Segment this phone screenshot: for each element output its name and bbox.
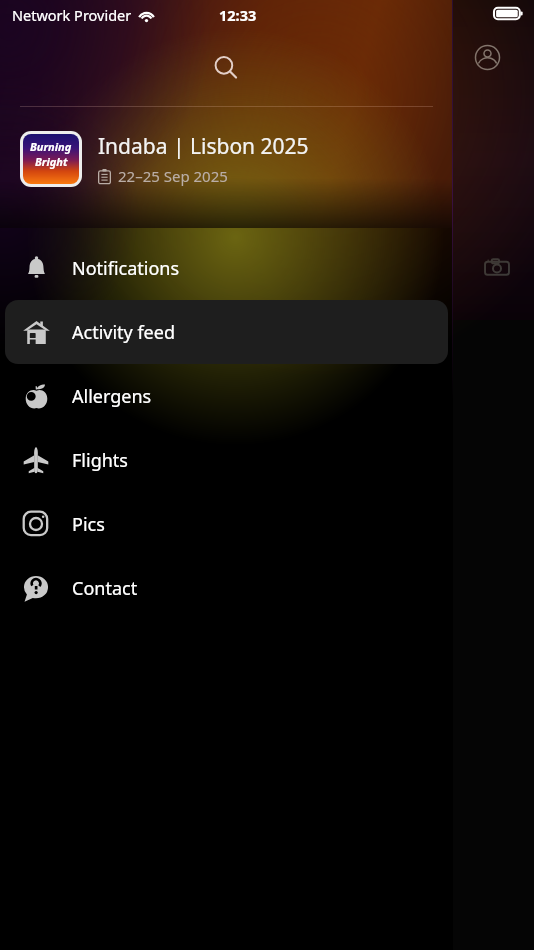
staticText: Notifications bbox=[72, 256, 180, 281]
staticText: 12:33 bbox=[219, 5, 257, 25]
button[interactable]: Pics bbox=[5, 492, 448, 556]
button[interactable]: Account bbox=[466, 36, 508, 78]
staticText: Activity feed bbox=[72, 320, 175, 345]
button[interactable]: Burning bbox=[0, 124, 453, 194]
button[interactable]: Search bbox=[202, 44, 250, 92]
button[interactable]: Flights bbox=[5, 428, 448, 492]
staticText: Pics bbox=[72, 512, 105, 537]
button[interactable]: Contact bbox=[5, 556, 448, 620]
staticText: Allergens bbox=[72, 384, 152, 409]
button[interactable]: Camera bbox=[477, 248, 517, 288]
staticText: 22–25 Sep 2025 bbox=[118, 166, 228, 186]
button[interactable]: Activity feed bbox=[5, 300, 448, 364]
button[interactable]: Allergens bbox=[5, 364, 448, 428]
staticText: Contact bbox=[72, 576, 138, 601]
button[interactable]: Notifications bbox=[5, 236, 448, 300]
staticText: Indaba | Lisbon 2025 bbox=[98, 132, 309, 161]
staticText: Burning bbox=[30, 139, 72, 154]
staticText: Network Provider bbox=[12, 5, 132, 25]
staticText: Flights bbox=[72, 448, 128, 473]
staticText: Bright bbox=[35, 154, 68, 169]
